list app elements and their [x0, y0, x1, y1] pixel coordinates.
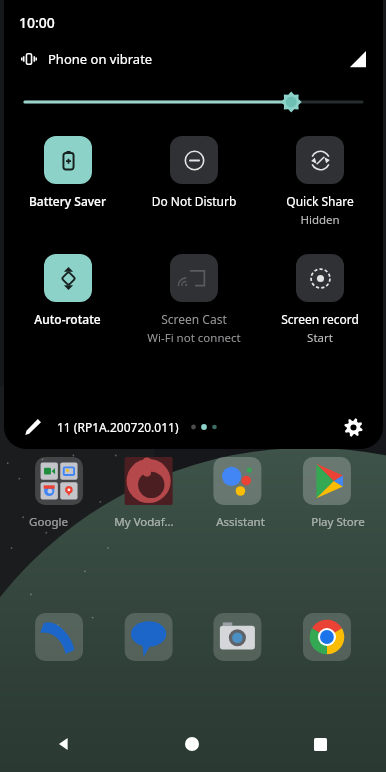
staticText: Play Store — [311, 514, 365, 530]
staticText: Google — [29, 514, 68, 530]
staticText: Hidden — [259, 212, 381, 228]
button[interactable]: Back — [0, 716, 128, 772]
staticText: Start — [259, 330, 381, 346]
staticText: 11 (RP1A.200720.011) — [57, 419, 179, 435]
button[interactable]: Screen Cast — [131, 254, 257, 346]
button[interactable]: Assistant — [192, 514, 289, 530]
button[interactable]: Google — [0, 514, 96, 530]
button[interactable]: Settings — [340, 414, 366, 440]
staticText: Assistant — [216, 514, 265, 530]
staticText: Auto-rotate — [6, 311, 129, 327]
button[interactable]: Brightness — [25, 89, 362, 115]
staticText: Battery Saver — [6, 193, 129, 209]
button[interactable]: Screen record — [257, 254, 383, 346]
staticText: Do Not Disturb — [133, 193, 255, 209]
button[interactable]: Play Store — [289, 514, 386, 530]
button[interactable]: Home — [128, 716, 256, 772]
staticText: Screen record — [259, 311, 381, 327]
button[interactable]: Do Not Disturb — [131, 136, 257, 209]
staticText: 10:00 — [19, 13, 55, 32]
button[interactable]: My Vodaf… — [96, 514, 192, 530]
staticText: Screen Cast — [133, 311, 255, 327]
button[interactable]: Quick Share — [257, 136, 383, 228]
button[interactable]: Battery Saver — [4, 136, 131, 209]
button[interactable]: Edit tiles — [21, 415, 45, 439]
staticText: My Vodaf… — [114, 514, 174, 530]
staticText: Quick Share — [259, 193, 381, 209]
staticText: Phone on vibrate — [48, 50, 153, 68]
button[interactable]: Auto-rotate — [4, 254, 131, 327]
button[interactable]: Recent apps — [256, 716, 384, 772]
staticText: Wi-Fi not connect — [133, 330, 255, 346]
